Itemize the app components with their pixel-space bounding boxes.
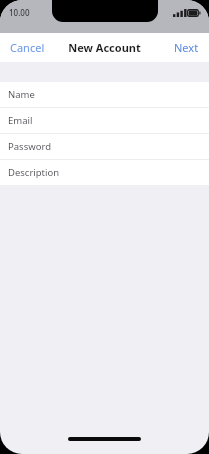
button[interactable]: Cancel [0, 34, 55, 61]
button[interactable]: Name [0, 82, 209, 107]
staticText: New Account [68, 40, 141, 55]
other: Home indicator [0, 434, 209, 454]
button[interactable]: Email [0, 108, 209, 133]
staticText: Description [8, 166, 60, 179]
button[interactable]: Next [164, 34, 209, 61]
button[interactable]: Description [0, 160, 209, 185]
staticText: Email [8, 114, 33, 127]
button[interactable]: Password [0, 134, 209, 159]
staticText: Name [8, 88, 35, 101]
staticText: Next [174, 40, 199, 55]
staticText: 10.00 [9, 7, 30, 18]
staticText: Cancel [10, 40, 45, 55]
staticText: Password [8, 140, 51, 153]
